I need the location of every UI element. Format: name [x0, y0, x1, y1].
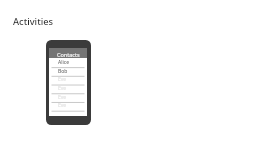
staticText: Eve	[58, 76, 67, 83]
staticText: Contacts	[57, 51, 80, 58]
staticText: Bob	[58, 68, 68, 75]
button[interactable]: Eve	[49, 102, 87, 111]
button[interactable]: Contacts	[49, 48, 87, 58]
staticText: Alice	[58, 59, 69, 66]
other: Phone mock-up showing the Contacts activ…	[46, 40, 91, 125]
button[interactable]: Eve	[49, 94, 87, 103]
button[interactable]: Alice	[49, 58, 87, 68]
staticText: Eve	[58, 85, 67, 92]
button[interactable]: Eve	[49, 76, 87, 85]
staticText: Activities	[13, 15, 54, 28]
staticText: Eve	[58, 102, 67, 109]
button[interactable]: Eve	[49, 85, 87, 94]
button[interactable]: Bob	[49, 68, 87, 77]
staticText: Eve	[58, 94, 67, 101]
